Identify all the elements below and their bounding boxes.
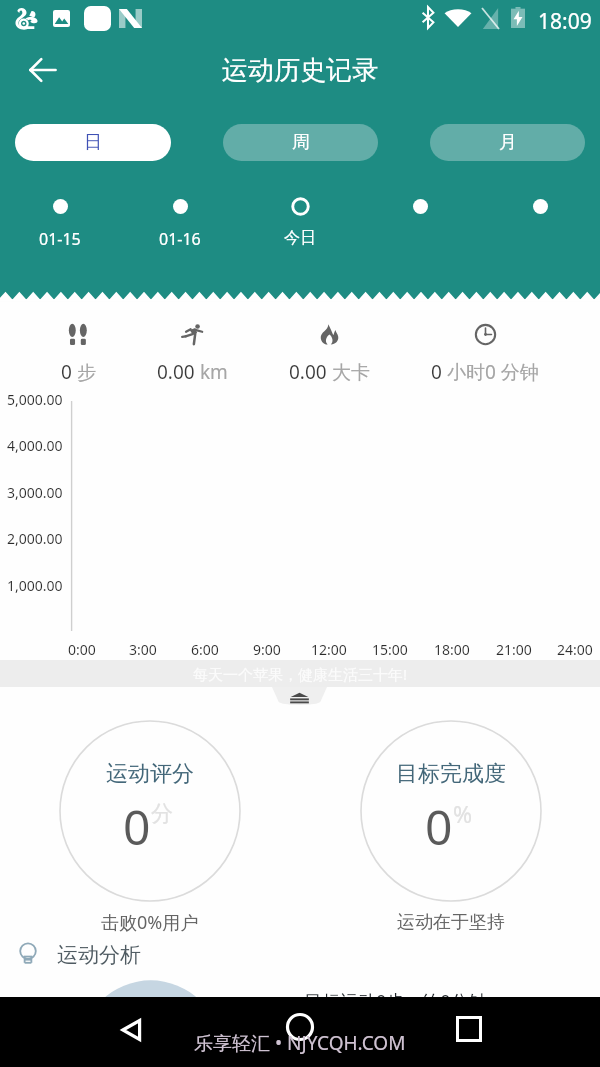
- button[interactable]: Recents: [450, 1010, 488, 1048]
- staticText: 18:09: [538, 7, 592, 36]
- staticText: 1,000.00: [7, 576, 63, 595]
- button[interactable]: [480, 196, 600, 228]
- staticText: 周: [292, 131, 310, 154]
- staticText: 01-15: [39, 228, 81, 250]
- button[interactable]: 周: [223, 124, 378, 161]
- button[interactable]: 运动评分: [59, 720, 241, 902]
- staticText: 每天一个苹果，健康生活三十年!: [193, 664, 408, 684]
- staticText: 15:00: [372, 640, 408, 659]
- staticText: 运动评分: [106, 760, 194, 788]
- staticText: 5,000.00: [7, 390, 63, 409]
- staticText: km: [195, 359, 228, 385]
- staticText: 18:00: [434, 640, 470, 659]
- staticText: 分: [151, 800, 173, 828]
- staticText: 0:00: [68, 640, 96, 659]
- staticText: 击败0%用户: [101, 910, 199, 934]
- staticText: 0: [61, 359, 72, 385]
- staticText: %: [453, 798, 473, 829]
- staticText: 大卡: [327, 359, 370, 385]
- button[interactable]: Home: [281, 1008, 319, 1046]
- staticText: 9:00: [253, 640, 281, 659]
- button[interactable]: 月: [430, 124, 585, 161]
- staticText: 目标完成度: [396, 760, 506, 788]
- staticText: 21:00: [496, 640, 532, 659]
- staticText: 今日: [284, 228, 316, 248]
- staticText: 步: [72, 359, 96, 385]
- staticText: 2,000.00: [7, 529, 63, 548]
- staticText: 6:00: [191, 640, 219, 659]
- button[interactable]: 01-16: [120, 196, 240, 250]
- staticText: 运动分析: [57, 942, 141, 968]
- staticText: 24:00: [557, 640, 593, 659]
- staticText: 0.00: [289, 359, 327, 385]
- button[interactable]: [360, 196, 480, 228]
- staticText: 运动历史记录: [222, 54, 378, 87]
- staticText: 3:00: [129, 640, 157, 659]
- staticText: 01-16: [159, 228, 201, 250]
- button[interactable]: Back: [26, 53, 60, 87]
- staticText: 小时0 分钟: [442, 359, 539, 385]
- staticText: 3,000.00: [7, 483, 63, 502]
- button[interactable]: 01-15: [0, 196, 120, 250]
- staticText: 日: [84, 131, 102, 154]
- button[interactable]: 目标完成度: [360, 720, 542, 902]
- button[interactable]: Expand: [272, 687, 327, 706]
- button[interactable]: 运动分析: [15, 935, 600, 975]
- staticText: 目标运动0步，约0分钟: [304, 989, 487, 1014]
- button[interactable]: 日: [15, 124, 171, 161]
- staticText: 0.00: [157, 359, 195, 385]
- staticText: 0: [431, 359, 442, 385]
- staticText: 12:00: [311, 640, 347, 659]
- staticText: 月: [499, 131, 517, 154]
- button[interactable]: Back: [113, 1011, 151, 1049]
- staticText: 0: [123, 794, 151, 859]
- staticText: 运动在于坚持: [397, 911, 505, 934]
- button[interactable]: 今日: [240, 196, 360, 248]
- staticText: 乐享轻汇 • NJYCQH.COM: [194, 1030, 406, 1056]
- staticText: 4,000.00: [7, 436, 63, 455]
- staticText: 0: [425, 794, 453, 859]
